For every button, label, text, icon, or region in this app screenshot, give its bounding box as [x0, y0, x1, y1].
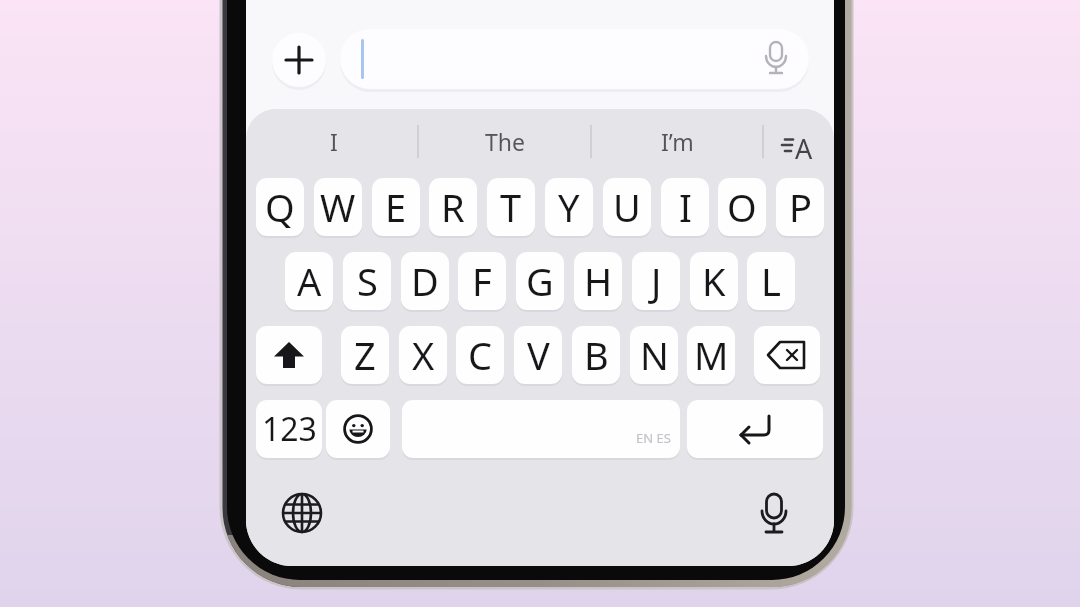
- staticText: W: [320, 181, 356, 233]
- staticText: Z: [354, 329, 376, 381]
- button[interactable]: X: [399, 326, 447, 384]
- staticText: I’m: [661, 126, 694, 157]
- staticText: R: [441, 181, 465, 233]
- staticText: A: [297, 255, 322, 307]
- button[interactable]: Q: [256, 178, 304, 236]
- button[interactable]: F: [458, 252, 506, 310]
- staticText: M: [694, 329, 729, 381]
- button[interactable]: Y: [545, 178, 593, 236]
- button[interactable]: [340, 29, 809, 89]
- staticText: V: [527, 329, 550, 381]
- staticText: I: [330, 126, 338, 157]
- button[interactable]: Z: [341, 326, 389, 384]
- button[interactable]: I’m: [591, 115, 763, 167]
- staticText: F: [472, 255, 492, 307]
- button[interactable]: U: [603, 178, 651, 236]
- button[interactable]: A: [285, 252, 333, 310]
- staticText: K: [702, 255, 726, 307]
- button[interactable]: The: [418, 115, 591, 167]
- button[interactable]: T: [487, 178, 535, 236]
- button[interactable]: [256, 326, 322, 384]
- button[interactable]: [754, 326, 820, 384]
- button[interactable]: I: [661, 178, 709, 236]
- staticText: T: [500, 181, 522, 233]
- staticText: H: [584, 255, 613, 307]
- button[interactable]: [272, 33, 326, 87]
- button[interactable]: P: [776, 178, 824, 236]
- button[interactable]: L: [747, 252, 795, 310]
- button[interactable]: S: [343, 252, 391, 310]
- staticText: G: [526, 255, 554, 307]
- staticText: The: [485, 126, 525, 157]
- button[interactable]: 123: [256, 400, 322, 458]
- button[interactable]: B: [572, 326, 620, 384]
- button[interactable]: [687, 400, 823, 458]
- button[interactable]: G: [516, 252, 564, 310]
- button[interactable]: E: [372, 178, 420, 236]
- button[interactable]: D: [401, 252, 449, 310]
- button[interactable]: I: [249, 115, 418, 167]
- staticText: EN ES: [636, 429, 671, 447]
- staticText: S: [357, 255, 378, 307]
- staticText: A: [795, 130, 813, 167]
- button[interactable]: [326, 400, 390, 458]
- staticText: B: [584, 329, 609, 381]
- button[interactable]: H: [574, 252, 622, 310]
- staticText: Q: [265, 181, 295, 233]
- button[interactable]: R: [429, 178, 477, 236]
- staticText: Y: [558, 181, 580, 233]
- button[interactable]: [276, 487, 328, 539]
- staticText: C: [468, 329, 493, 381]
- staticText: N: [640, 329, 669, 381]
- staticText: 123: [262, 407, 317, 451]
- button[interactable]: M: [687, 326, 735, 384]
- staticText: X: [412, 329, 435, 381]
- staticText: O: [727, 181, 757, 233]
- button[interactable]: [763, 115, 834, 167]
- staticText: P: [789, 181, 812, 233]
- button[interactable]: N: [630, 326, 678, 384]
- staticText: D: [411, 255, 439, 307]
- button[interactable]: K: [690, 252, 738, 310]
- staticText: L: [761, 255, 781, 307]
- staticText: I: [679, 181, 692, 233]
- button[interactable]: W: [314, 178, 362, 236]
- button[interactable]: O: [718, 178, 766, 236]
- staticText: U: [613, 181, 641, 233]
- button[interactable]: J: [632, 252, 680, 310]
- button[interactable]: C: [456, 326, 504, 384]
- button[interactable]: EN ES: [402, 400, 680, 458]
- staticText: E: [385, 181, 407, 233]
- button[interactable]: [748, 489, 800, 541]
- button[interactable]: V: [514, 326, 562, 384]
- staticText: J: [651, 255, 662, 307]
